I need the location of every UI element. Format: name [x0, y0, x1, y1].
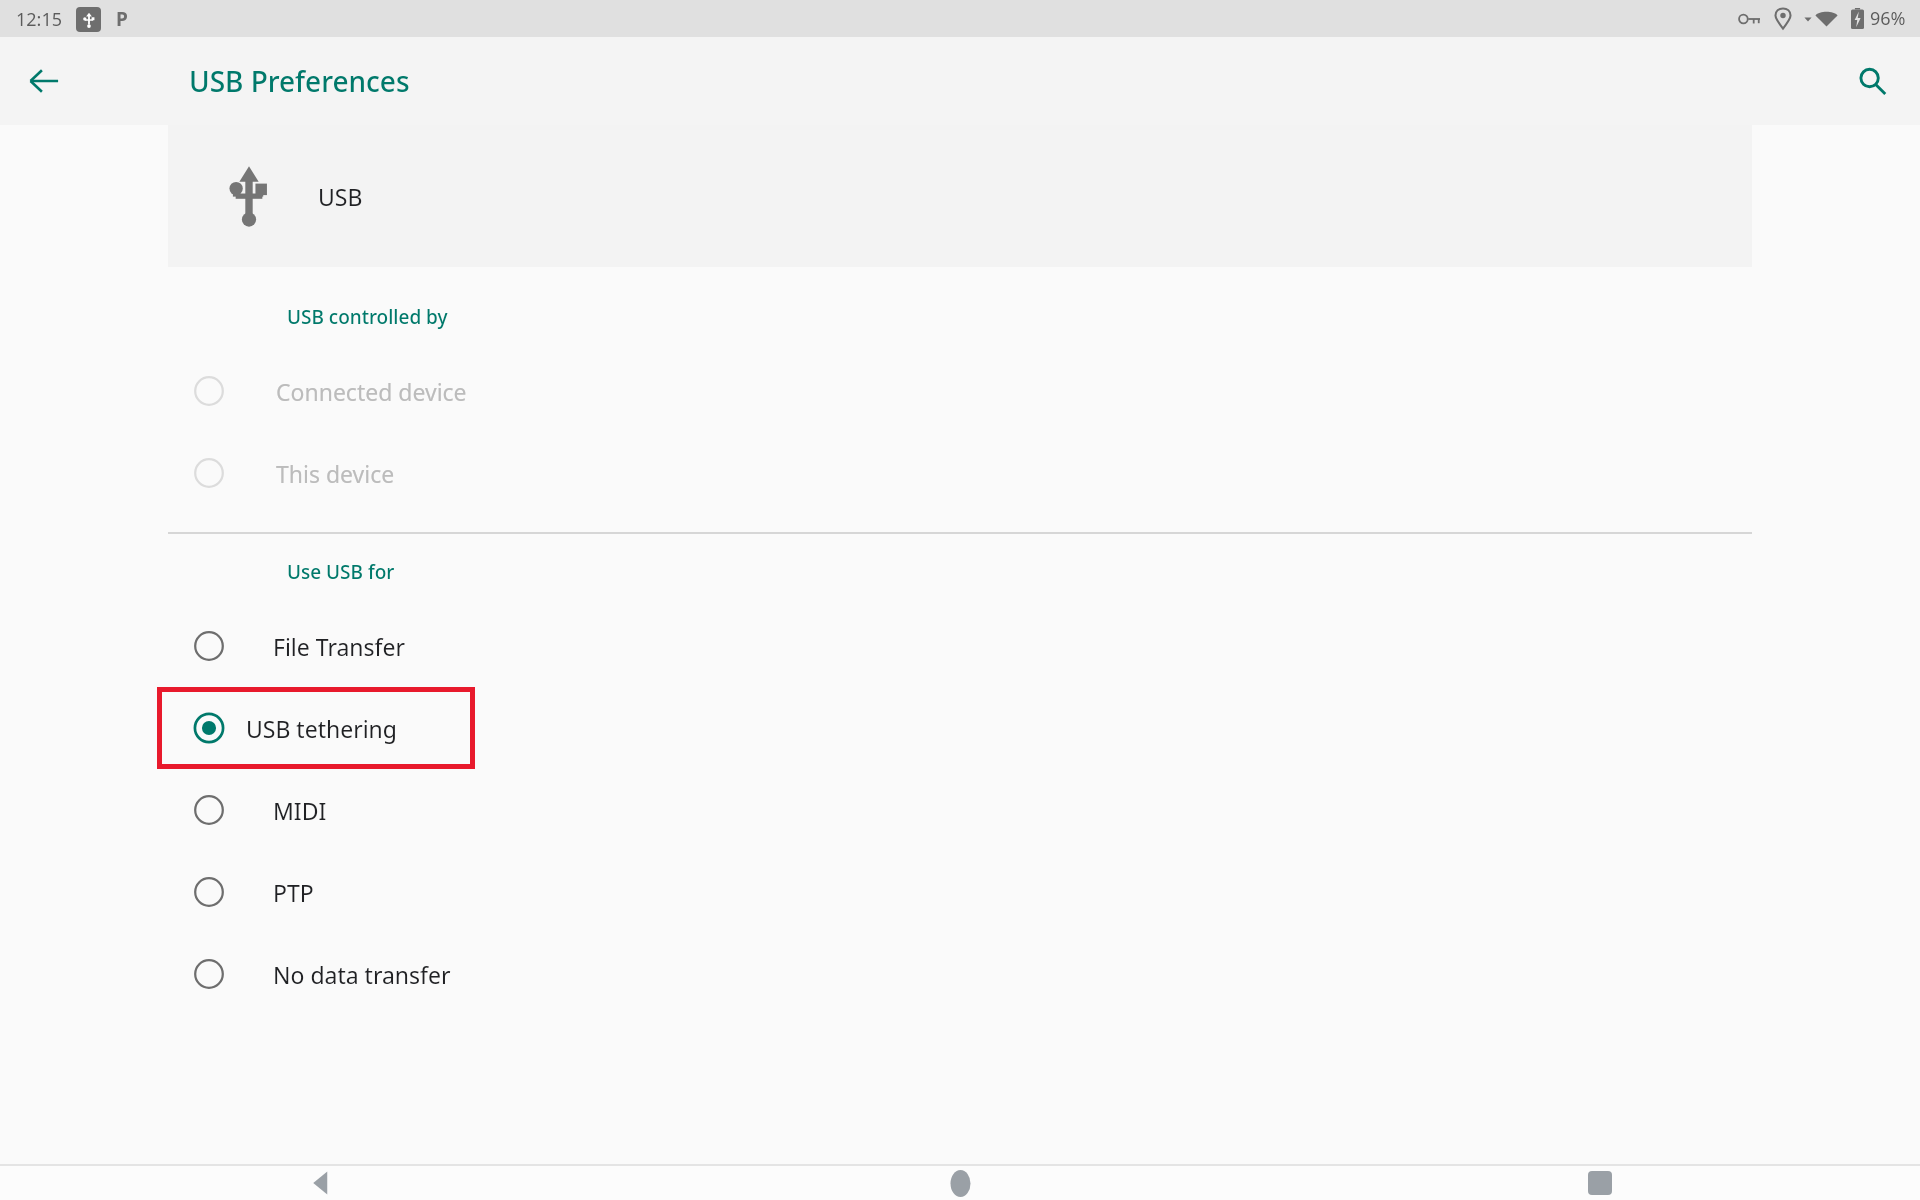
staticText: USB tethering: [246, 713, 397, 744]
staticText: Use USB for: [287, 559, 395, 585]
staticText: No data transfer: [273, 959, 451, 990]
staticText: PTP: [273, 877, 314, 908]
button[interactable]: Back: [0, 1166, 640, 1200]
staticText: USB controlled by: [287, 304, 448, 330]
staticText: This device: [276, 458, 395, 489]
button[interactable]: Search: [1840, 49, 1904, 113]
button[interactable]: File Transfer: [0, 605, 1920, 687]
staticText: Connected device: [276, 376, 467, 407]
button[interactable]: USB: [168, 125, 1752, 267]
button[interactable]: PTP: [0, 851, 1920, 933]
staticText: USB: [318, 181, 363, 212]
button[interactable]: Home: [640, 1166, 1280, 1200]
button[interactable]: [157, 687, 475, 769]
button[interactable]: No data transfer: [0, 933, 1920, 1015]
staticText: 12:15: [16, 7, 63, 32]
button[interactable]: This device: [0, 432, 1920, 514]
button[interactable]: Connected device: [0, 350, 1920, 432]
button[interactable]: MIDI: [0, 769, 1920, 851]
staticText: MIDI: [273, 795, 327, 826]
staticText: P: [116, 6, 128, 32]
button[interactable]: Recent apps: [1280, 1166, 1920, 1200]
staticText: USB Preferences: [189, 62, 410, 100]
staticText: 96%: [1870, 6, 1906, 31]
staticText: File Transfer: [273, 631, 405, 662]
button[interactable]: Back: [12, 49, 76, 113]
